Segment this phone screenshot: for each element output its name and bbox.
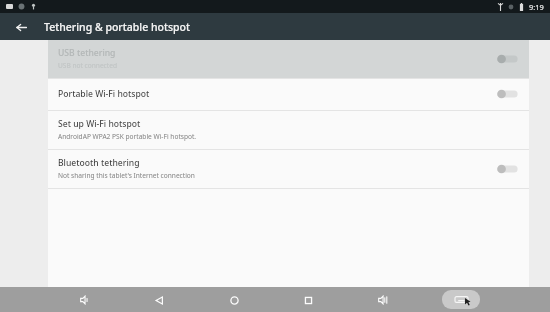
staticText: USB tethering	[58, 47, 116, 59]
button[interactable]: Toggle	[495, 161, 521, 177]
button[interactable]: Volume up	[368, 289, 398, 311]
button[interactable]: Portable Wi-Fi hotspot	[48, 79, 529, 110]
button[interactable]: Home	[219, 289, 249, 311]
button[interactable]: Bluetooth tethering	[48, 150, 529, 188]
button[interactable]: USB tethering	[48, 40, 529, 78]
button[interactable]: Set up Wi-Fi hotspot	[48, 111, 529, 149]
staticText: USB not connected	[58, 61, 117, 70]
button[interactable]: Volume down	[70, 289, 100, 311]
button[interactable]: Recents	[293, 289, 323, 311]
staticText: Portable Wi-Fi hotspot	[58, 88, 150, 100]
staticText: Set up Wi-Fi hotspot	[58, 118, 141, 130]
staticText: Bluetooth tethering	[58, 157, 140, 169]
button[interactable]: Toggle	[495, 51, 521, 67]
button[interactable]: Keyboard	[442, 290, 480, 309]
button[interactable]: Back	[144, 289, 174, 311]
staticText: Not sharing this tablet's Internet conne…	[58, 171, 195, 180]
button[interactable]: Back	[10, 16, 32, 38]
staticText: 9:19	[529, 2, 544, 12]
staticText: Tethering & portable hotspot	[44, 20, 190, 34]
staticText: AndroidAP WPA2 PSK portable Wi-Fi hotspo…	[58, 132, 197, 141]
button[interactable]: Toggle	[495, 86, 521, 102]
